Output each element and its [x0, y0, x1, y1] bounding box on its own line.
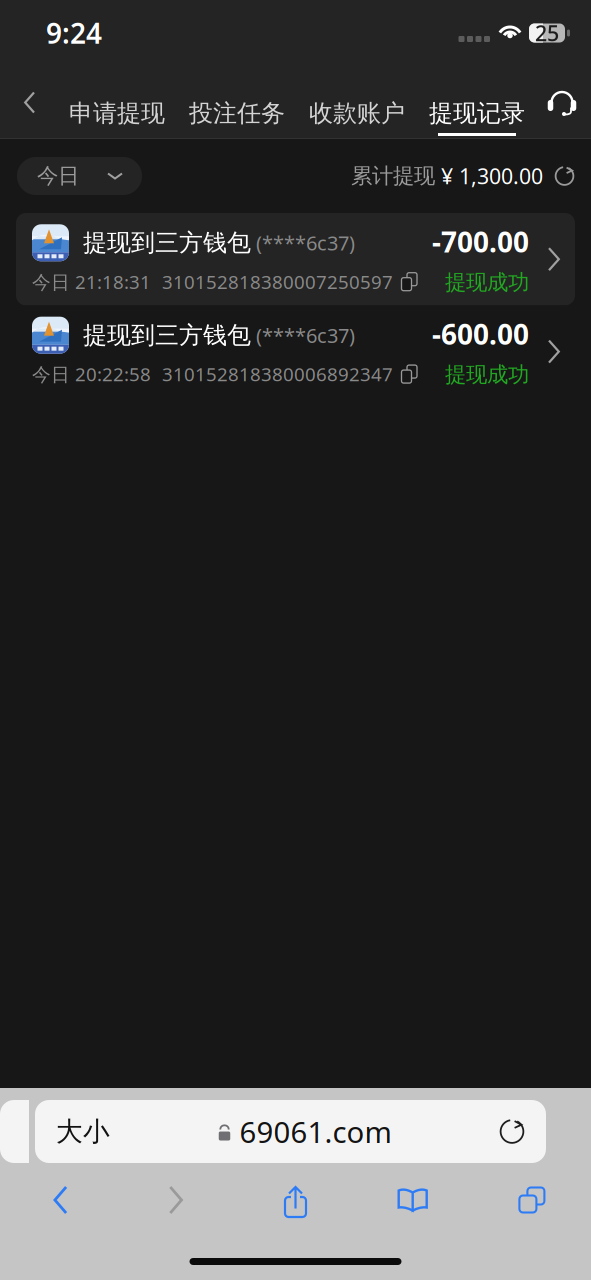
- staticText: 提现成功: [445, 362, 529, 388]
- button[interactable]: Customer service: [537, 66, 587, 139]
- staticText: 今日 20:22:58: [32, 362, 151, 386]
- staticText: 申请提现: [69, 98, 165, 128]
- button[interactable]: 收款账户: [297, 66, 417, 139]
- button[interactable]: Share: [253, 1177, 337, 1223]
- staticText: 今日: [37, 163, 79, 189]
- button[interactable]: 投注任务: [177, 66, 297, 139]
- staticText: 投注任务: [189, 98, 285, 128]
- button[interactable]: Refresh: [543, 165, 575, 186]
- staticText: (****6c37): [256, 322, 355, 348]
- staticText: 提现记录: [429, 98, 525, 128]
- button[interactable]: 提现到三方钱包: [16, 305, 575, 398]
- staticText: 69061.com: [231, 1112, 391, 1151]
- button[interactable]: Back: [0, 66, 57, 139]
- button[interactable]: 申请提现: [57, 66, 177, 139]
- staticText: -600.00: [432, 315, 529, 353]
- staticText: 310152818380007250597: [162, 269, 393, 294]
- button[interactable]: 大小: [35, 1100, 546, 1163]
- button[interactable]: 今日: [17, 157, 142, 195]
- button[interactable]: 提现记录: [417, 66, 537, 139]
- button[interactable]: Bookmarks: [372, 1177, 456, 1223]
- staticText: 提现到三方钱包: [83, 320, 251, 350]
- staticText: (****6c37): [256, 229, 355, 256]
- button[interactable]: Tabs: [490, 1177, 574, 1223]
- staticText: 今日 21:18:31: [32, 269, 151, 294]
- staticText: 9:24: [46, 14, 102, 52]
- staticText: 提现到三方钱包: [83, 228, 251, 258]
- staticText: 提现成功: [445, 269, 529, 295]
- staticText: 收款账户: [309, 98, 405, 128]
- button[interactable]: Forward: [135, 1177, 219, 1223]
- button[interactable]: 提现到三方钱包: [16, 213, 575, 305]
- button[interactable]: Back: [17, 1177, 101, 1223]
- staticText: 310152818380006892347: [162, 362, 393, 386]
- staticText: 25: [535, 19, 559, 47]
- staticText: -700.00: [432, 223, 529, 260]
- staticText: ¥ 1,300.00: [435, 162, 543, 190]
- staticText: 累计提现: [351, 163, 435, 189]
- staticText: 大小: [56, 1115, 110, 1148]
